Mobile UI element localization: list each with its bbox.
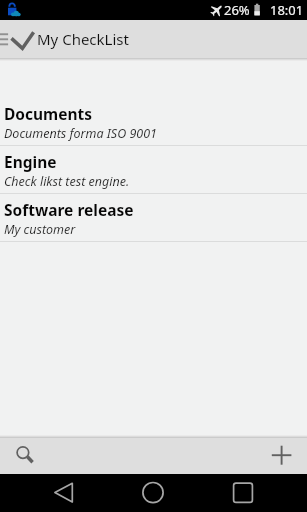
button[interactable]: Recent apps (205, 474, 307, 512)
staticText: Check likst test engine. (4, 173, 130, 190)
staticText: Software release (4, 199, 134, 220)
button[interactable]: Add item (261, 438, 307, 474)
staticText: My CheckList (37, 29, 129, 49)
button[interactable]: Open navigation drawer (0, 20, 37, 58)
staticText: Engine (4, 151, 57, 172)
staticText: Documents (4, 103, 93, 124)
staticText: 18:01 (270, 1, 304, 19)
staticText: 26% (224, 1, 250, 19)
button[interactable]: Search (0, 438, 46, 474)
button[interactable]: Engine (0, 146, 307, 194)
staticText: My customer (4, 221, 76, 238)
button[interactable]: Documents (0, 98, 307, 146)
button[interactable]: Back (0, 474, 103, 512)
button[interactable]: Software release (0, 194, 307, 242)
staticText: Documents forma ISO 9001 (4, 125, 157, 142)
button[interactable]: Home (103, 474, 205, 512)
